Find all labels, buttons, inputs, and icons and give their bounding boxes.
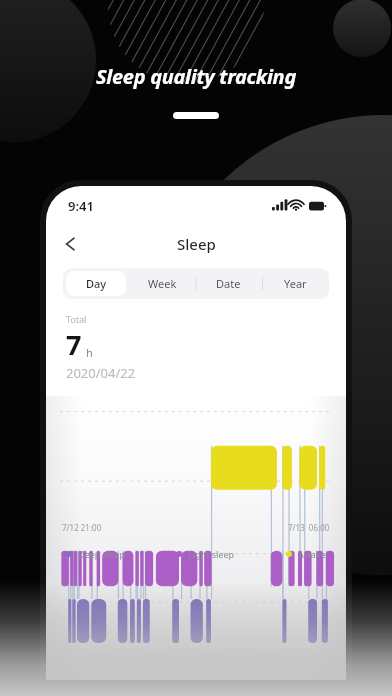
button[interactable]: Week <box>132 271 192 296</box>
button[interactable]: Light sleep <box>176 548 235 560</box>
staticText: Sleep quality tracking <box>96 63 296 90</box>
staticText: h <box>86 345 93 360</box>
staticText: Year <box>284 276 307 291</box>
staticText: 7 <box>66 326 82 363</box>
staticText: 2020/04/22 <box>66 364 136 382</box>
staticText: Light sleep <box>188 548 235 560</box>
staticText: Week <box>148 276 177 291</box>
staticText: Awake <box>298 548 326 560</box>
button[interactable]: Back <box>54 227 88 261</box>
staticText: Sleep <box>177 234 216 254</box>
staticText: 9:41 <box>68 197 94 215</box>
button[interactable]: Day <box>66 271 126 296</box>
staticText: Day <box>86 276 107 291</box>
button[interactable]: Deep sleep <box>66 548 125 560</box>
staticText: Total <box>66 313 87 325</box>
staticText: 7/13 06:00 <box>288 522 330 533</box>
button[interactable]: Date <box>198 271 259 296</box>
button[interactable]: Awake <box>286 548 326 560</box>
button[interactable]: Year <box>265 271 326 296</box>
staticText: Deep sleep <box>78 548 125 560</box>
staticText: Date <box>216 276 241 291</box>
staticText: 7/12 21:00 <box>62 522 102 533</box>
